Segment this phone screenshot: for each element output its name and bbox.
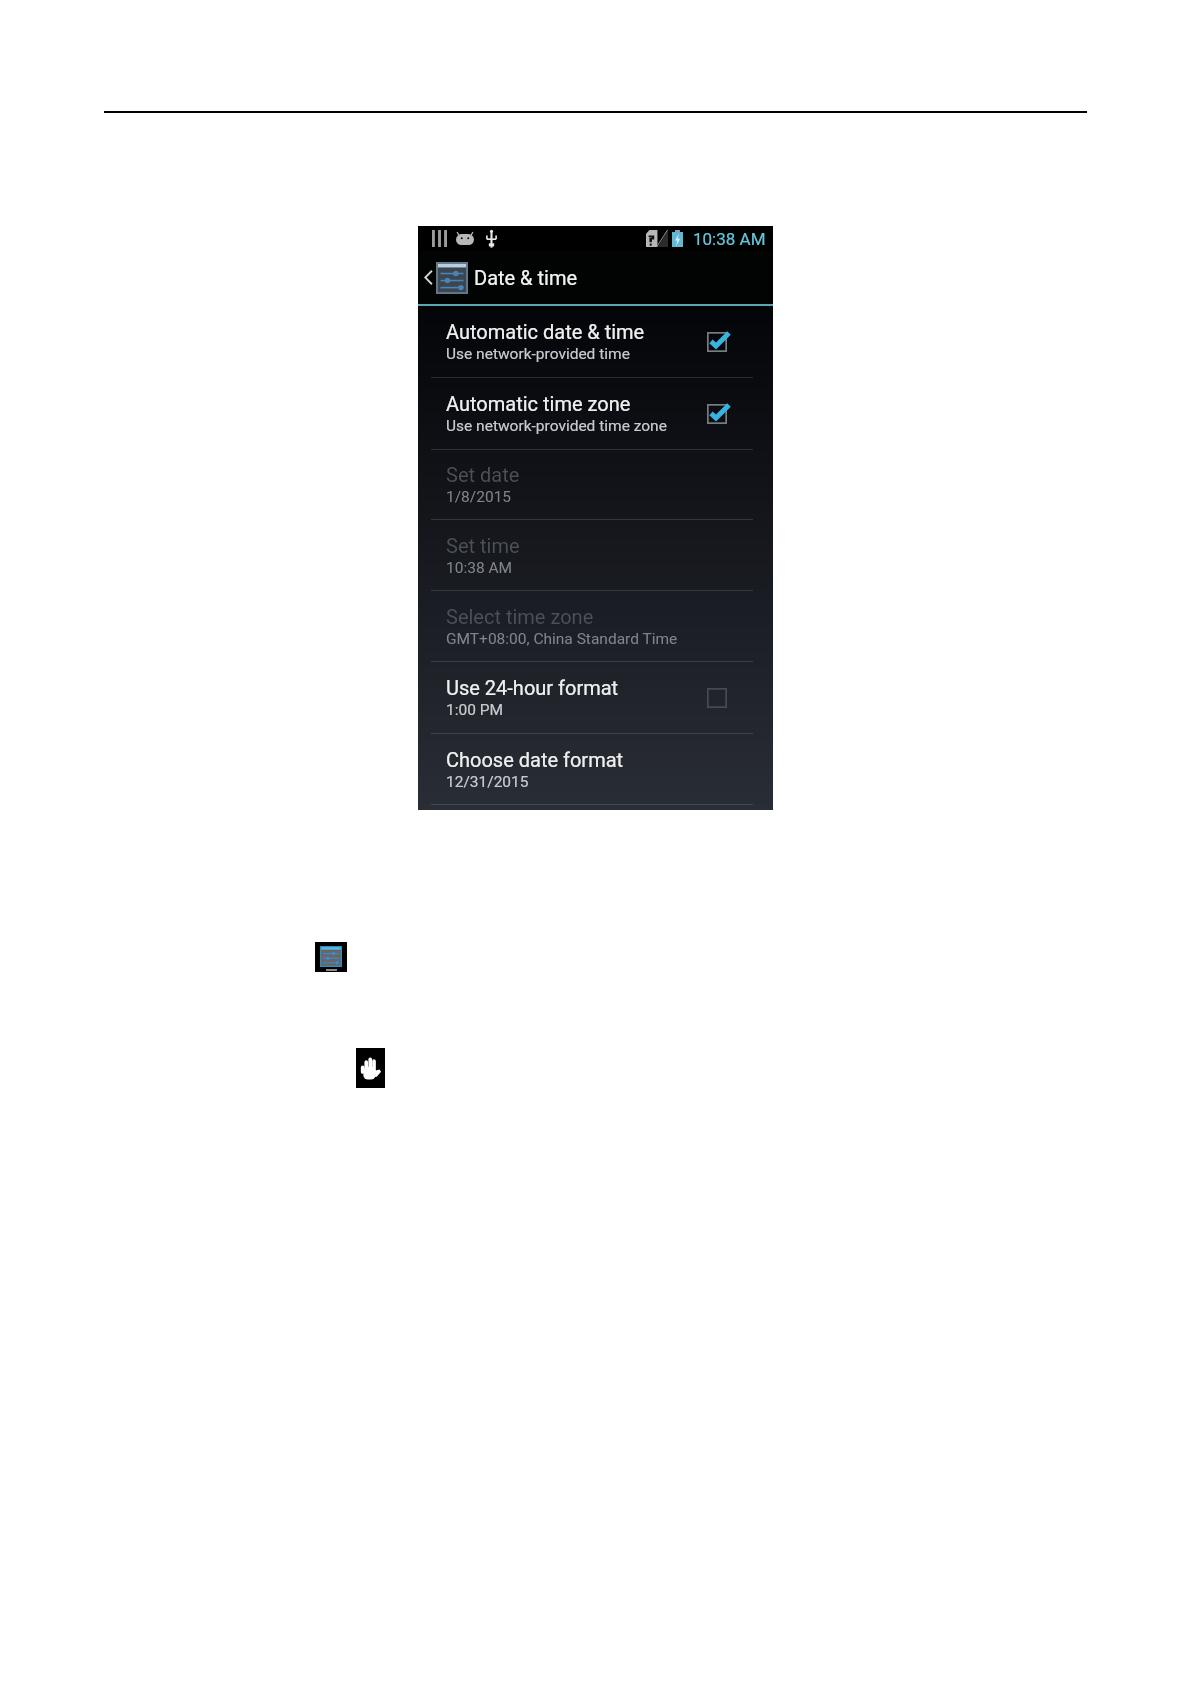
button[interactable]: Use 24-hour format, not checked (707, 688, 727, 708)
button[interactable]: Automatic date & time, checked (707, 332, 727, 352)
staticText: GMT+08:00, China Standard Time (446, 630, 678, 648)
staticText: Automatic time zone (446, 392, 631, 415)
button[interactable]: Automatic date & time (418, 306, 773, 377)
staticText: 12/31/2015 (446, 773, 529, 791)
staticText: Set date (446, 463, 520, 486)
button[interactable]: Tap with hand (356, 1048, 385, 1088)
button[interactable]: Select time zone (418, 591, 773, 661)
staticText: Automatic date & time (446, 320, 645, 343)
staticText: 1:00 PM (446, 701, 504, 719)
staticText: Use 24-hour format (446, 676, 619, 699)
staticText: 10:38 AM (693, 229, 766, 249)
button[interactable]: Navigate up (418, 251, 586, 304)
staticText: Choose date format (446, 748, 624, 771)
staticText: 10:38 AM (446, 559, 513, 577)
button[interactable]: Set date (418, 450, 773, 519)
staticText: 1/8/2015 (446, 488, 512, 506)
staticText: Set time (446, 534, 520, 557)
staticText: Use network-provided time (446, 345, 630, 363)
button[interactable]: Automatic time zone (418, 378, 773, 449)
button[interactable]: Automatic time zone, checked (707, 404, 727, 424)
staticText: Select time zone (446, 605, 594, 628)
button[interactable]: Set time (418, 520, 773, 590)
button[interactable]: Choose date format (418, 734, 773, 804)
staticText: Use network-provided time zone (446, 417, 667, 435)
button[interactable]: Date and time settings icon (315, 942, 347, 972)
staticText: Date & time (474, 266, 578, 289)
button[interactable]: Use 24-hour format (418, 662, 773, 733)
